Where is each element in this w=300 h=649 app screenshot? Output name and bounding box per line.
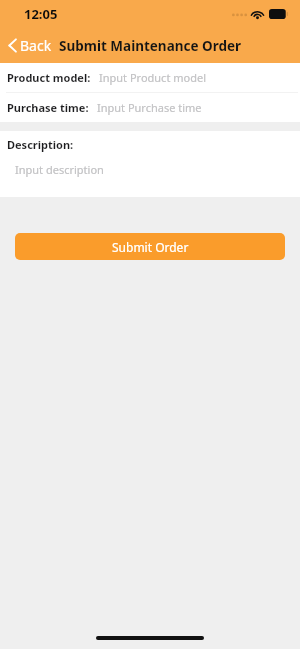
button[interactable]: Submit Order — [15, 233, 285, 260]
other: Home indicator — [96, 636, 204, 640]
staticText: Input Product model — [99, 70, 206, 85]
staticText: 12:05 — [24, 5, 58, 23]
button[interactable]: Input description — [0, 157, 300, 197]
button[interactable]: Product model: — [0, 63, 300, 92]
staticText: Back — [20, 36, 52, 55]
staticText: Input description — [15, 162, 104, 177]
button[interactable]: Purchase time: — [0, 93, 300, 122]
button[interactable]: Back — [0, 32, 62, 59]
staticText: Product model: — [7, 70, 91, 85]
staticText: Submit Maintenance Order — [59, 37, 242, 55]
staticText: Input Purchase time — [97, 100, 202, 115]
staticText: Submit Order — [112, 239, 189, 255]
staticText: Purchase time: — [7, 100, 89, 115]
staticText: Description: — [7, 137, 74, 152]
